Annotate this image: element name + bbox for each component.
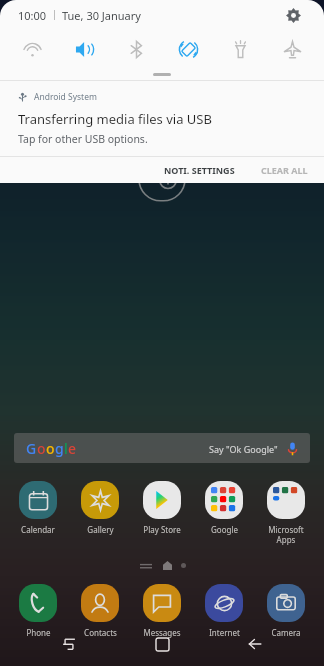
button[interactable]: Calendar [8, 479, 68, 537]
button[interactable]: NOTI. SETTINGS [154, 159, 245, 181]
staticText: Tap for other USB options. [18, 132, 148, 146]
button[interactable]: Google [194, 479, 254, 537]
button[interactable]: Contacts [70, 582, 130, 640]
staticText: Contacts [84, 627, 117, 638]
staticText: o [37, 439, 46, 458]
button[interactable]: Camera [256, 582, 316, 640]
button[interactable]: Auto rotate [168, 30, 208, 68]
staticText: CLEAR ALL [261, 164, 308, 176]
staticText: Phone [26, 627, 51, 638]
staticText: Camera [271, 627, 301, 638]
button[interactable]: Phone [8, 582, 68, 640]
staticText: NOTI. SETTINGS [164, 164, 235, 176]
button[interactable]: Bluetooth [116, 30, 156, 68]
button[interactable]: Wi-Fi [12, 30, 52, 68]
staticText: 10:00 [18, 8, 47, 23]
staticText: Play Store [143, 524, 181, 535]
button[interactable]: Home [138, 622, 186, 666]
staticText: Say "Ok Google" [209, 443, 278, 455]
button[interactable]: Messages [132, 582, 192, 640]
button[interactable]: Flashlight [220, 30, 260, 68]
button[interactable]: Expand quick settings [153, 73, 171, 76]
button[interactable]: Recents [45, 622, 93, 666]
staticText: Messages [143, 627, 181, 638]
button[interactable]: Back [231, 622, 279, 666]
button[interactable]: Android System [0, 81, 324, 156]
button[interactable]: Internet [194, 582, 254, 640]
staticText: Calendar [21, 524, 55, 535]
staticText: e [68, 439, 77, 458]
button[interactable]: Microsoft Apps [256, 479, 316, 547]
button[interactable]: Airplane mode [272, 30, 312, 68]
staticText: l [64, 439, 68, 458]
button[interactable]: Sound [64, 30, 104, 68]
other: Voice search [287, 442, 298, 456]
staticText: Google [211, 524, 238, 535]
staticText: Android System [34, 91, 97, 103]
button[interactable]: Settings [280, 2, 306, 28]
staticText: Microsoft Apps [268, 524, 304, 545]
button[interactable]: CLEAR ALL [251, 159, 318, 181]
staticText: G [26, 439, 37, 458]
staticText: Internet [209, 627, 240, 638]
staticText: Tue, 30 January [62, 8, 141, 23]
staticText: g [55, 439, 64, 458]
staticText: o [46, 439, 55, 458]
staticText: Transferring media files via USB [18, 110, 212, 128]
button[interactable]: G [14, 433, 310, 463]
button[interactable]: Play Store [132, 479, 192, 537]
button[interactable]: Gallery [70, 479, 130, 537]
staticText: Gallery [87, 524, 114, 535]
